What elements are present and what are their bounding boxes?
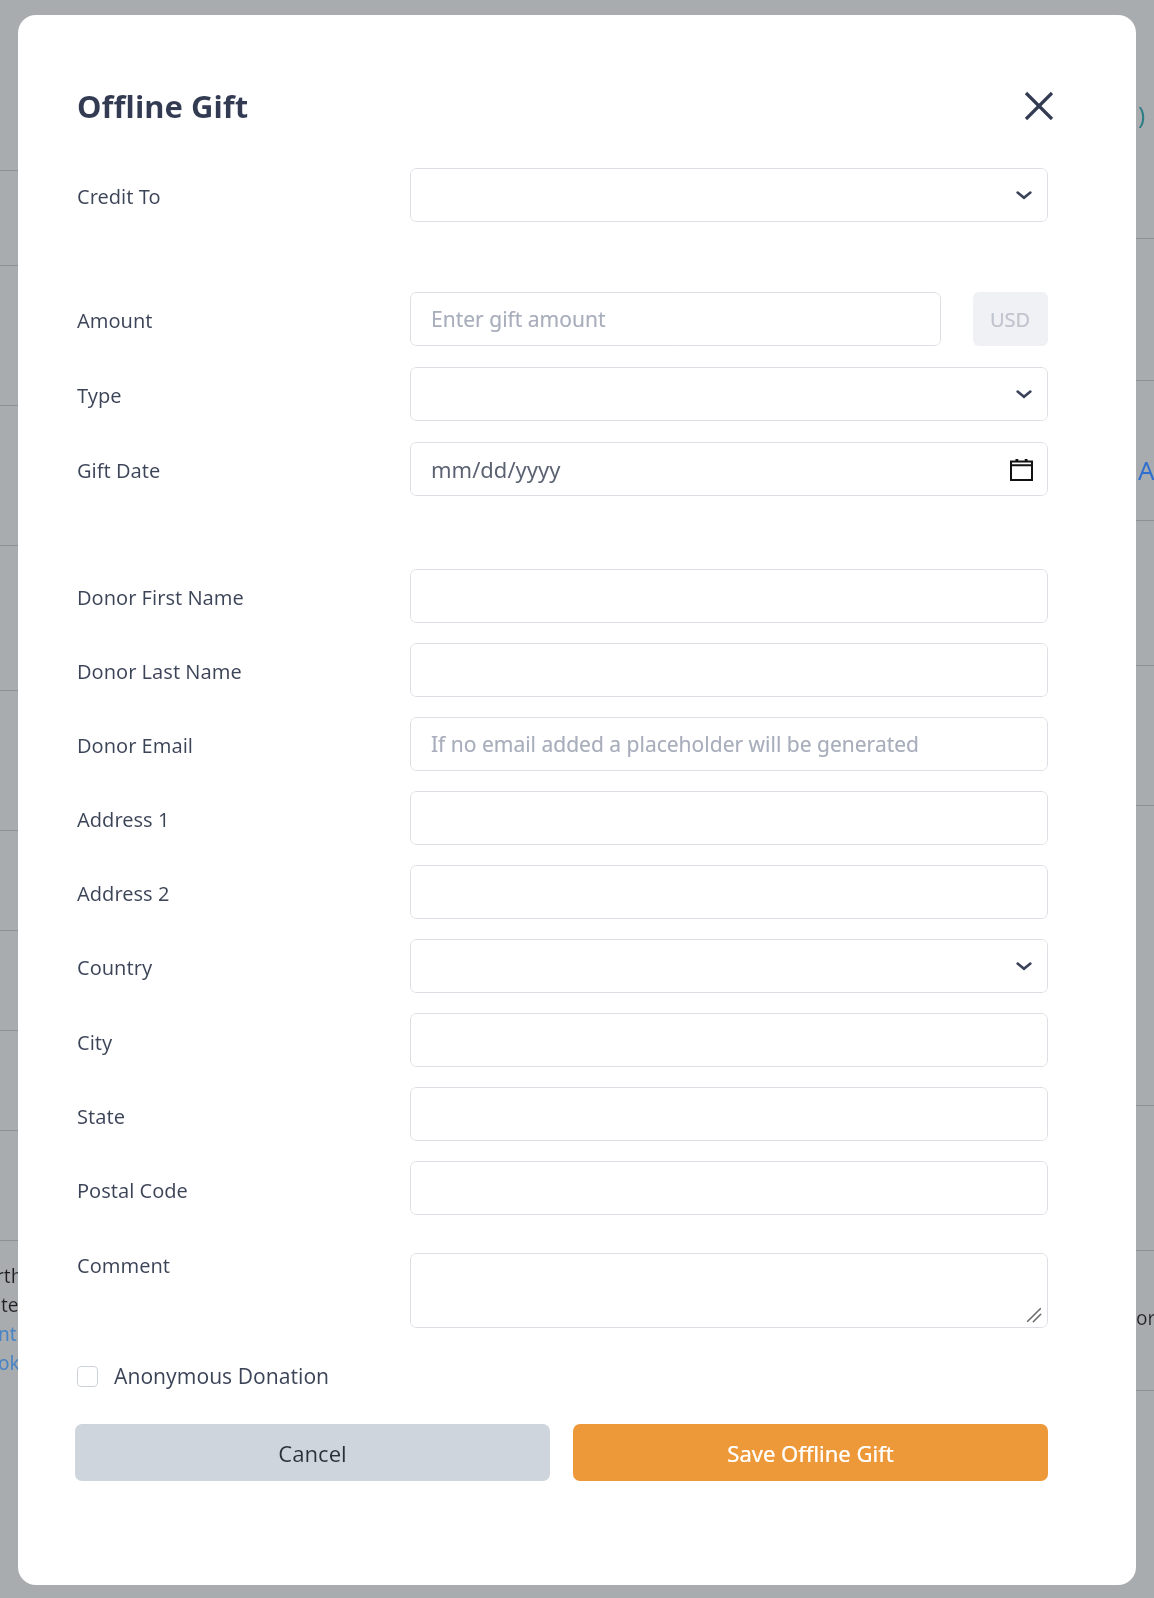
button[interactable] (410, 367, 1048, 421)
staticText: Offline Gift (77, 85, 249, 127)
button[interactable]: If no email added a placeholder will be … (410, 717, 1048, 771)
button[interactable] (410, 1253, 1048, 1328)
staticText: Country (77, 954, 153, 981)
button[interactable] (410, 643, 1048, 697)
staticText: ) (1138, 98, 1146, 131)
button[interactable] (410, 939, 1048, 993)
staticText: Address 1 (77, 806, 170, 833)
button[interactable]: Pick date (1006, 454, 1036, 484)
button[interactable] (410, 1013, 1048, 1067)
staticText: ok (0, 1350, 20, 1376)
staticText: nt (0, 1321, 17, 1347)
staticText: Address 2 (77, 880, 170, 907)
staticText: Cancel (278, 1438, 347, 1468)
button[interactable] (410, 168, 1048, 222)
button[interactable]: Close (1011, 78, 1067, 134)
button[interactable]: mm/dd/yyyy (410, 442, 1048, 496)
button[interactable]: Save Offline Gift (573, 1424, 1048, 1481)
staticText: Save Offline Gift (727, 1438, 894, 1468)
staticText: Comment (77, 1252, 170, 1279)
button[interactable] (410, 1087, 1048, 1141)
button[interactable] (410, 865, 1048, 919)
staticText: mm/dd/yyyy (431, 454, 561, 484)
staticText: State (77, 1103, 125, 1130)
staticText: City (77, 1029, 113, 1056)
button[interactable]: Cancel (75, 1424, 550, 1481)
button[interactable]: Anonymous Donation (70, 1355, 338, 1397)
staticText: ite (0, 1292, 19, 1318)
staticText: Gift Date (77, 457, 161, 484)
staticText: Donor Last Name (77, 658, 242, 685)
staticText: Anonymous Donation (114, 1362, 330, 1391)
staticText: If no email added a placeholder will be … (431, 730, 919, 759)
staticText: or (1136, 1305, 1154, 1331)
staticText: A (1138, 452, 1154, 487)
staticText: USD (990, 306, 1031, 333)
staticText: Enter gift amount (431, 305, 606, 334)
button[interactable]: Enter gift amount (410, 292, 941, 346)
staticText: Postal Code (77, 1177, 188, 1204)
staticText: Amount (77, 307, 153, 334)
staticText: Type (77, 382, 122, 409)
button[interactable] (410, 1161, 1048, 1215)
staticText: Donor Email (77, 732, 193, 759)
button[interactable] (410, 791, 1048, 845)
staticText: Donor First Name (77, 584, 244, 611)
button[interactable] (410, 569, 1048, 623)
staticText: rth (0, 1263, 23, 1289)
staticText: Credit To (77, 183, 161, 210)
